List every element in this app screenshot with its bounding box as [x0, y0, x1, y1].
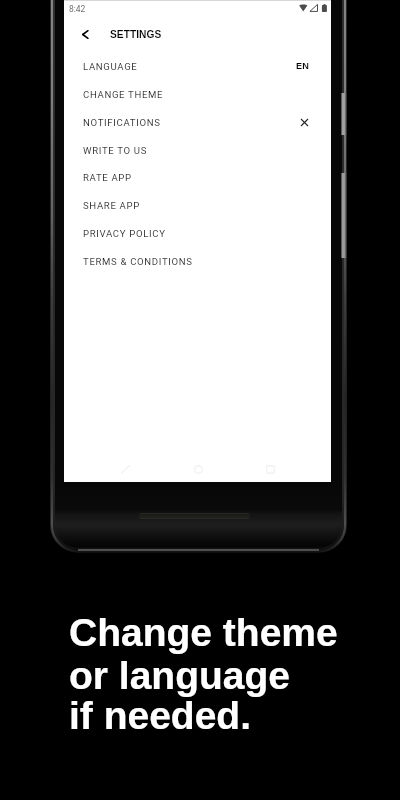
staticText: if needed. — [69, 694, 252, 738]
staticText: PRIVACY POLICY — [83, 228, 166, 239]
button[interactable]: SHARE APP — [64, 191, 331, 219]
staticText: TERMS & CONDITIONS — [83, 256, 193, 267]
button[interactable]: CHANGE THEME — [64, 80, 331, 108]
staticText: WRITE TO US — [83, 145, 148, 156]
button[interactable]: Recents — [258, 457, 282, 481]
staticText: SHARE APP — [83, 200, 140, 211]
button[interactable]: Back — [74, 23, 96, 45]
button[interactable]: Volume button — [341, 173, 347, 258]
staticText: CHANGE THEME — [83, 89, 164, 100]
button[interactable]: PRIVACY POLICY — [64, 219, 331, 247]
staticText: 8:42 — [69, 4, 86, 14]
staticText: Change theme — [69, 611, 338, 655]
staticText: SETTINGS — [110, 29, 162, 40]
staticText: NOTIFICATIONS — [83, 117, 161, 128]
staticText: EN — [296, 61, 309, 71]
button[interactable]: WRITE TO US — [64, 136, 331, 164]
staticText: LANGUAGE — [83, 61, 138, 72]
button[interactable]: RATE APP — [64, 163, 331, 191]
button[interactable]: TERMS & CONDITIONS — [64, 247, 331, 275]
staticText: RATE APP — [83, 172, 132, 183]
button[interactable]: LANGUAGE — [64, 52, 331, 80]
button[interactable]: Power button — [341, 93, 347, 135]
button[interactable]: NOTIFICATIONS — [64, 108, 331, 136]
staticText: or language — [69, 654, 291, 698]
